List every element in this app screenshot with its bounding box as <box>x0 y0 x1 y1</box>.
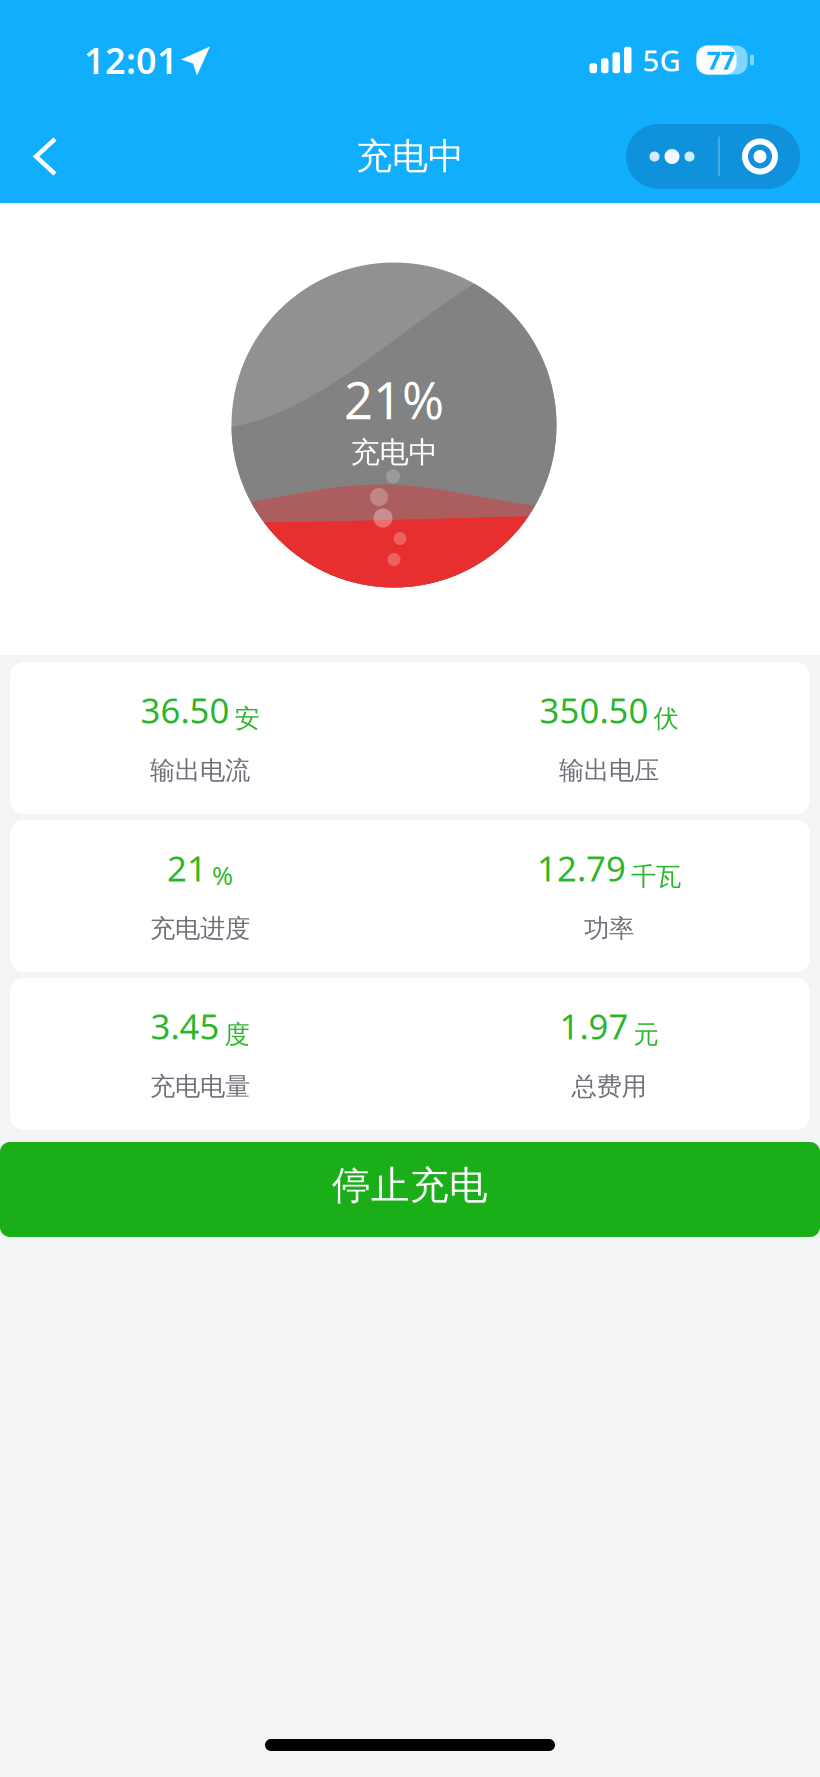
staticText: 充电中 <box>350 434 437 470</box>
staticText: 总费用 <box>571 1071 646 1102</box>
staticText: 1.97 <box>559 1003 628 1049</box>
staticText: 3.45 <box>150 1003 219 1049</box>
staticText: 充电中 <box>356 134 464 179</box>
staticText: 停止充电 <box>332 1162 488 1209</box>
staticText: 千瓦 <box>631 861 681 892</box>
staticText: % <box>212 858 233 892</box>
staticText: 21 <box>167 845 207 891</box>
staticText: 36.50 <box>140 687 229 733</box>
button[interactable]: Back <box>0 110 87 203</box>
staticText: 功率 <box>584 913 634 944</box>
button[interactable]: 停止充电 <box>0 1142 820 1237</box>
staticText: 元 <box>633 1019 658 1050</box>
staticText: 充电电量 <box>150 1071 250 1102</box>
staticText: 21% <box>344 366 444 433</box>
staticText: 安 <box>234 703 259 734</box>
staticText: 5G <box>642 40 680 79</box>
button[interactable]: Close <box>720 124 800 189</box>
staticText: 度 <box>224 1019 249 1050</box>
staticText: 输出电压 <box>559 755 659 786</box>
staticText: 输出电流 <box>150 755 250 786</box>
staticText: 12.79 <box>537 845 626 891</box>
staticText: 伏 <box>653 703 678 734</box>
staticText: 77 <box>706 43 734 77</box>
button[interactable]: More <box>626 124 718 189</box>
staticText: 350.50 <box>539 687 648 733</box>
staticText: 12:01 <box>84 36 178 84</box>
staticText: 充电进度 <box>150 913 250 944</box>
